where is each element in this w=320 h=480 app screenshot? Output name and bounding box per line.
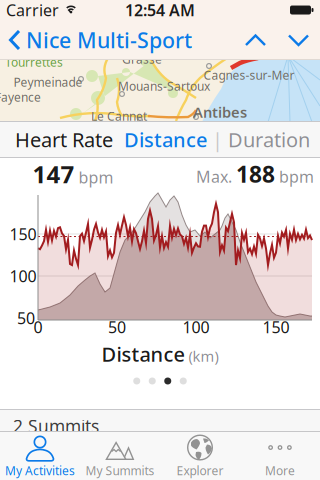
button[interactable]: Explorer bbox=[160, 431, 240, 480]
button[interactable]: Distance bbox=[124, 126, 207, 153]
button[interactable]: Duration bbox=[228, 126, 320, 153]
staticText: Explorer bbox=[176, 462, 223, 478]
staticText: Distance bbox=[124, 126, 207, 153]
staticText: Fayence bbox=[0, 89, 41, 105]
staticText: | bbox=[207, 126, 228, 153]
staticText: Grasse bbox=[122, 51, 162, 67]
staticText: 2 Summits bbox=[13, 414, 99, 437]
staticText: My Activities bbox=[5, 462, 75, 478]
staticText: Heart Rate bbox=[15, 126, 113, 153]
staticText: 150 bbox=[262, 316, 289, 338]
button[interactable]: 2 Summits bbox=[0, 409, 320, 431]
staticText: 100 bbox=[182, 316, 209, 338]
staticText: 188 bbox=[236, 159, 275, 189]
staticText: Cagnes-sur-Mer bbox=[203, 67, 294, 83]
staticText: Distance bbox=[101, 341, 184, 367]
staticText: 100 bbox=[9, 265, 36, 287]
staticText: Nice Multi-Sport bbox=[26, 26, 192, 54]
button[interactable]: Nice Multi-Sport bbox=[0, 26, 192, 54]
staticText: 50 bbox=[108, 316, 126, 338]
staticText: Max. bbox=[196, 166, 236, 187]
staticText: Le Cannet bbox=[91, 108, 147, 124]
staticText: 0 bbox=[33, 316, 42, 338]
staticText: 50 bbox=[17, 307, 35, 329]
button[interactable]: Next activity bbox=[277, 31, 320, 48]
button[interactable]: More bbox=[240, 431, 320, 480]
staticText: Mouans-Sartoux bbox=[118, 78, 210, 94]
staticText: My Summits bbox=[85, 462, 154, 478]
button[interactable]: My Summits bbox=[80, 431, 160, 480]
staticText: 147 bbox=[32, 158, 74, 190]
staticText: 12:54 AM bbox=[125, 0, 195, 21]
staticText: Tourrettes bbox=[5, 54, 63, 70]
staticText: Antibes bbox=[193, 102, 247, 122]
staticText: (km) bbox=[188, 346, 218, 366]
staticText: Duration bbox=[228, 126, 310, 153]
staticText: Carrier bbox=[6, 0, 59, 21]
button[interactable]: Previous activity bbox=[234, 31, 277, 48]
staticText: bpm bbox=[74, 167, 113, 188]
staticText: More bbox=[265, 462, 295, 478]
staticText: 150 bbox=[9, 223, 36, 245]
staticText: bpm bbox=[275, 166, 314, 187]
staticText: Peymeinade bbox=[13, 74, 82, 90]
button[interactable]: My Activities bbox=[0, 431, 80, 480]
